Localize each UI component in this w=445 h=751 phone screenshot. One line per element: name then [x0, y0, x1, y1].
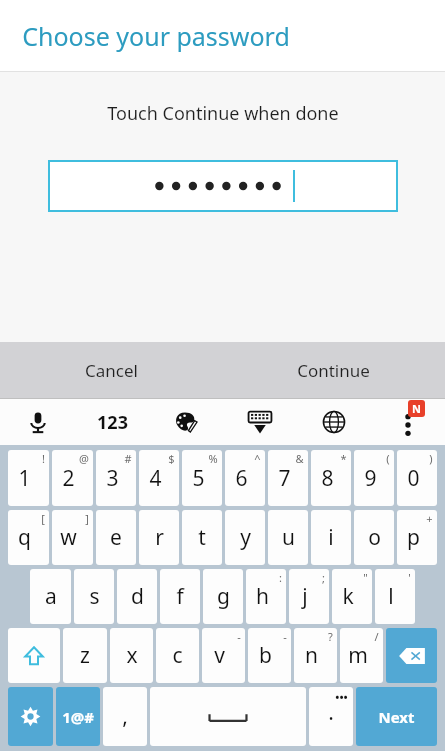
button[interactable]: ,: [103, 687, 147, 746]
staticText: ': [408, 570, 411, 585]
button[interactable]: f: [160, 569, 200, 624]
staticText: f: [176, 582, 184, 611]
staticText: 2: [62, 464, 75, 493]
button[interactable]: c: [156, 628, 199, 683]
button[interactable]: r: [139, 510, 179, 565]
button[interactable]: Cancel: [0, 342, 222, 398]
staticText: ): [429, 451, 433, 466]
button[interactable]: Next: [356, 687, 437, 746]
button[interactable]: 2: [52, 450, 93, 506]
button[interactable]: s: [74, 569, 114, 624]
staticText: u: [282, 523, 295, 552]
staticText: l: [388, 582, 394, 611]
staticText: +: [426, 511, 433, 526]
button[interactable]: 7: [268, 450, 308, 506]
button[interactable]: x: [110, 628, 153, 683]
button[interactable]: j: [289, 569, 329, 624]
staticText: 7: [278, 464, 291, 493]
button[interactable]: 0: [397, 450, 437, 506]
staticText: a: [45, 582, 57, 611]
staticText: ;: [322, 570, 325, 585]
button[interactable]: i: [311, 510, 351, 565]
button[interactable]: l: [375, 569, 415, 624]
staticText: z: [80, 641, 90, 670]
button[interactable]: d: [117, 569, 157, 624]
staticText: r: [155, 523, 164, 552]
button[interactable]: y: [225, 510, 265, 565]
staticText: o: [368, 523, 381, 552]
staticText: y: [240, 523, 251, 552]
staticText: (: [386, 451, 390, 466]
staticText: 123: [97, 410, 128, 435]
button[interactable]: 1@#: [56, 687, 100, 746]
staticText: 9: [364, 464, 377, 493]
button[interactable]: Continue: [222, 342, 445, 398]
staticText: Continue: [297, 359, 370, 382]
staticText: :: [279, 570, 282, 585]
button[interactable]: a: [30, 569, 71, 624]
button[interactable]: w: [52, 510, 93, 565]
button[interactable]: Period: [309, 687, 353, 746]
staticText: c: [172, 641, 183, 670]
button[interactable]: Backspace: [386, 628, 437, 683]
button[interactable]: v: [202, 628, 245, 683]
staticText: .: [328, 698, 334, 727]
staticText: %: [208, 451, 218, 466]
staticText: s: [89, 582, 100, 611]
staticText: #: [124, 451, 132, 466]
staticText: Choose your password: [22, 19, 290, 53]
button[interactable]: 9: [354, 450, 394, 506]
staticText: Cancel: [85, 359, 138, 382]
button[interactable]: Keyboard settings: [8, 687, 53, 746]
button[interactable]: 1: [8, 450, 49, 506]
button[interactable]: e: [96, 510, 136, 565]
button[interactable]: p: [397, 510, 437, 565]
staticText: v: [214, 641, 225, 670]
button[interactable]: t: [182, 510, 222, 565]
button[interactable]: u: [268, 510, 308, 565]
staticText: ]: [85, 511, 89, 526]
button[interactable]: More options: [371, 399, 445, 445]
button[interactable]: n: [294, 628, 337, 683]
button[interactable]: 4: [139, 450, 179, 506]
button[interactable]: [48, 160, 398, 212]
staticText: k: [342, 582, 354, 611]
staticText: 1: [18, 464, 31, 493]
staticText: w: [60, 523, 77, 552]
button[interactable]: Hide keyboard: [223, 399, 297, 445]
staticText: 5: [192, 464, 205, 493]
staticText: [: [41, 511, 45, 526]
button[interactable]: k: [332, 569, 372, 624]
button[interactable]: m: [340, 628, 383, 683]
staticText: 8: [321, 464, 334, 493]
staticText: g: [217, 582, 230, 611]
button[interactable]: 5: [182, 450, 222, 506]
button[interactable]: z: [63, 628, 107, 683]
staticText: 3: [106, 464, 119, 493]
button[interactable]: o: [354, 510, 394, 565]
button[interactable]: g: [203, 569, 243, 624]
button[interactable]: b: [248, 628, 291, 683]
button[interactable]: 6: [225, 450, 265, 506]
staticText: /: [374, 629, 379, 644]
button[interactable]: Change language: [297, 399, 371, 445]
staticText: d: [131, 582, 144, 611]
button[interactable]: Space: [150, 687, 306, 746]
staticText: !: [42, 451, 45, 466]
button[interactable]: 3: [96, 450, 136, 506]
staticText: p: [407, 523, 420, 552]
staticText: 4: [149, 464, 162, 493]
button[interactable]: Voice input: [0, 399, 75, 445]
button[interactable]: Shift: [8, 628, 60, 683]
button[interactable]: h: [246, 569, 286, 624]
staticText: b: [259, 641, 272, 670]
button[interactable]: Theme: [149, 399, 223, 445]
staticText: &: [295, 451, 304, 466]
button[interactable]: 8: [311, 450, 351, 506]
staticText: m: [348, 641, 368, 670]
staticText: ^: [254, 451, 261, 466]
button[interactable]: q: [8, 510, 49, 565]
button[interactable]: Numbers: [75, 399, 149, 445]
staticText: $: [168, 451, 175, 466]
staticText: i: [328, 523, 334, 552]
